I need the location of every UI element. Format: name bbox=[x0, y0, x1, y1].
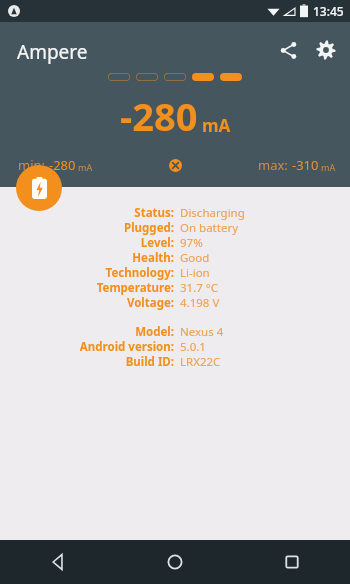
staticText: 97% bbox=[180, 235, 203, 250]
button[interactable]: Recents bbox=[233, 540, 350, 584]
button[interactable]: Reset bbox=[164, 154, 186, 176]
staticText: mA bbox=[321, 161, 336, 173]
button[interactable]: Battery status bbox=[16, 165, 62, 211]
staticText: Nexus 4 bbox=[180, 324, 224, 339]
staticText: Status: bbox=[0, 205, 174, 220]
button[interactable]: Home bbox=[116, 540, 233, 584]
staticText: mA bbox=[202, 114, 231, 137]
staticText: Discharging bbox=[180, 205, 245, 220]
staticText: Good bbox=[180, 250, 210, 265]
staticText: Ampere bbox=[17, 39, 88, 65]
staticText: Level: bbox=[0, 235, 174, 250]
button[interactable]: Back bbox=[0, 540, 116, 584]
staticText: Voltage: bbox=[0, 295, 174, 310]
staticText: max: bbox=[258, 156, 292, 174]
staticText: LRX22C bbox=[180, 354, 221, 369]
staticText: 4.198 V bbox=[180, 295, 220, 310]
staticText: 13:45 bbox=[313, 3, 344, 19]
staticText: 5.0.1 bbox=[180, 339, 206, 354]
button[interactable]: Settings bbox=[310, 34, 342, 66]
staticText: On battery bbox=[180, 220, 239, 235]
staticText: Plugged: bbox=[0, 220, 174, 235]
staticText: mA bbox=[78, 161, 93, 173]
staticText: -280 bbox=[120, 90, 198, 142]
staticText: Build ID: bbox=[0, 354, 174, 369]
staticText: Technology: bbox=[0, 265, 174, 280]
staticText: Health: bbox=[0, 250, 174, 265]
button[interactable]: Share bbox=[272, 34, 304, 66]
staticText: -280 bbox=[49, 156, 76, 174]
staticText: Model: bbox=[0, 324, 174, 339]
staticText: Li-ion bbox=[180, 265, 210, 280]
staticText: 31.7 °C bbox=[180, 280, 218, 295]
staticText: min: bbox=[18, 156, 49, 174]
staticText: -310 bbox=[292, 156, 319, 174]
staticText: Android version: bbox=[0, 339, 174, 354]
staticText: Temperature: bbox=[0, 280, 174, 295]
